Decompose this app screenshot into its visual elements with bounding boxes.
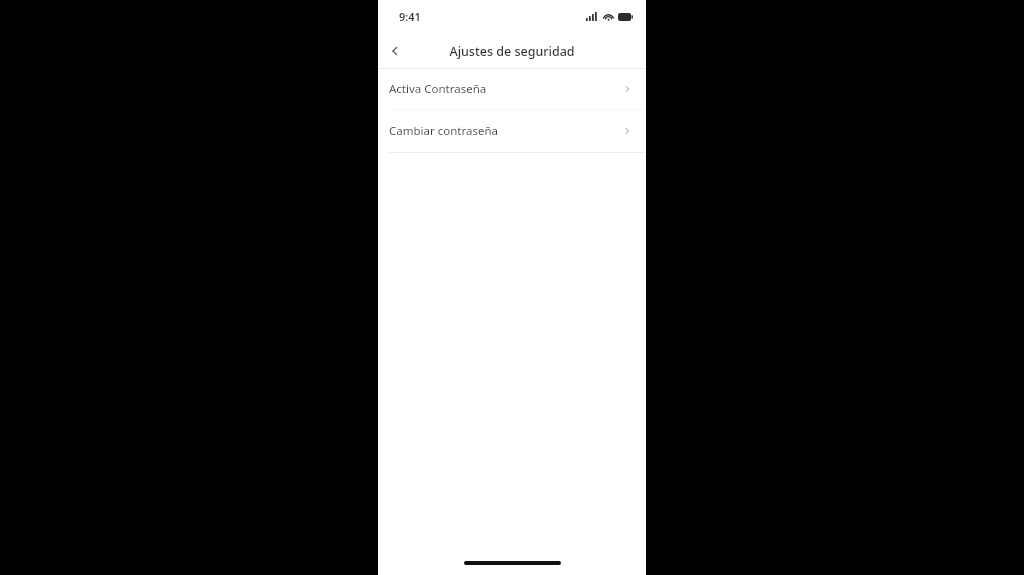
button[interactable]: Activa Contraseña [378, 69, 646, 109]
staticText: Activa Contraseña [389, 81, 487, 97]
staticText: Ajustes de seguridad [449, 43, 575, 60]
button[interactable]: Back [378, 34, 412, 68]
button[interactable]: Cambiar contraseña [378, 110, 646, 152]
staticText: 9:41 [399, 9, 421, 24]
staticText: Cambiar contraseña [389, 123, 498, 139]
